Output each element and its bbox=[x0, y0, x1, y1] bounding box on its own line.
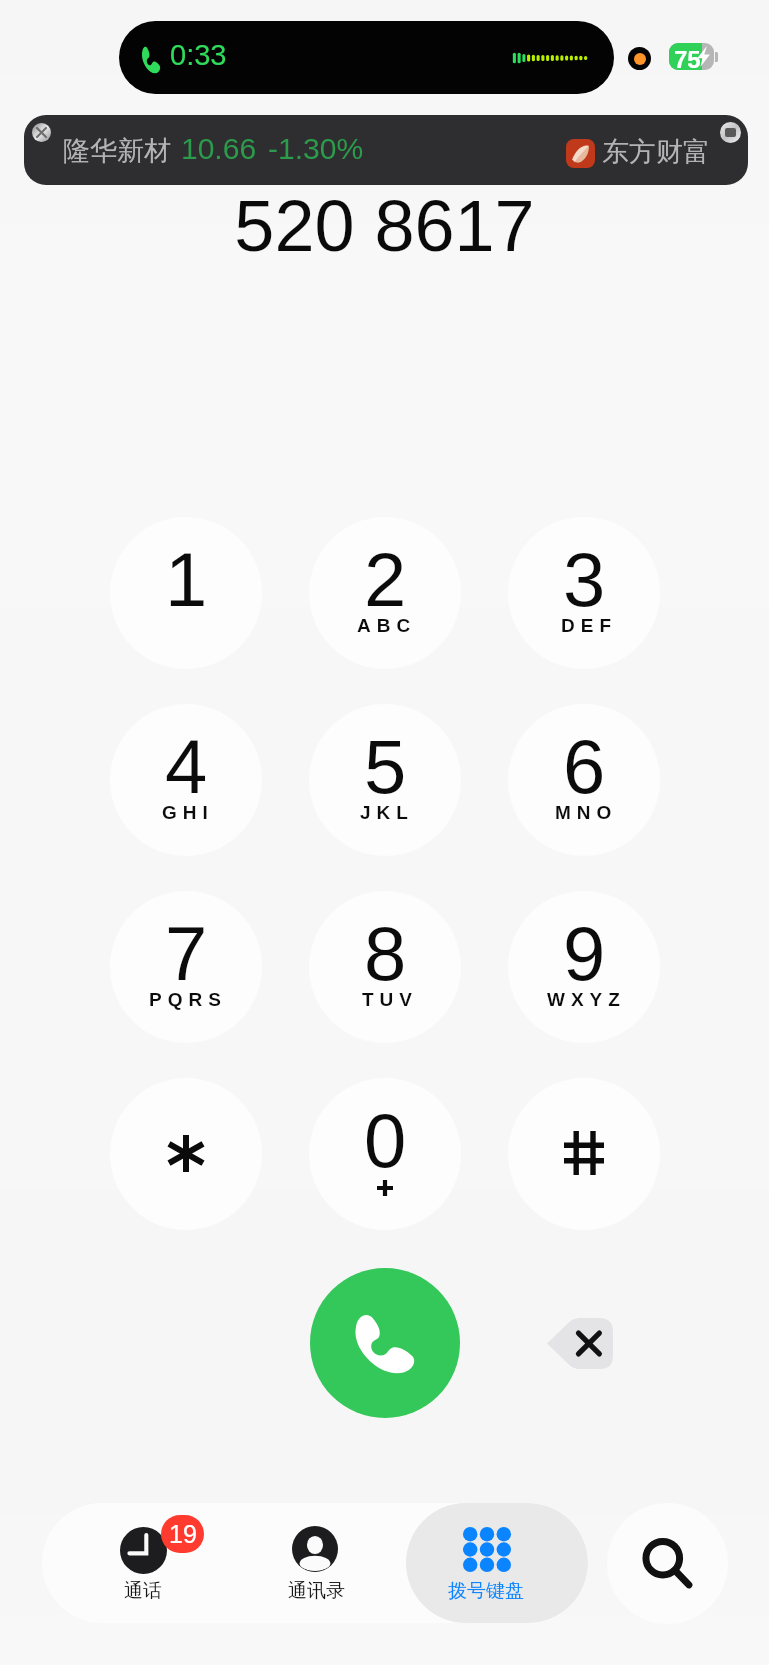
staticText: 3 bbox=[563, 537, 606, 622]
staticText: 19 bbox=[169, 1520, 197, 1548]
staticText: WXYZ bbox=[547, 989, 626, 1010]
staticText: MNO bbox=[555, 802, 618, 823]
button[interactable]: 2 bbox=[309, 517, 461, 669]
button[interactable]: 3 bbox=[508, 517, 660, 669]
staticText: DEF bbox=[558, 615, 614, 636]
staticText: 通讯录 bbox=[288, 1579, 345, 1603]
staticText: -1.30% bbox=[268, 132, 364, 166]
button[interactable]: 7 bbox=[110, 891, 262, 1043]
staticText: 6 bbox=[563, 724, 606, 809]
button[interactable]: Expand bbox=[720, 122, 741, 143]
button[interactable]: hash bbox=[508, 1078, 660, 1230]
button[interactable]: Stock notification bbox=[24, 115, 748, 185]
button[interactable]: 5 bbox=[309, 704, 461, 856]
button[interactable]: 0 bbox=[309, 1078, 461, 1230]
button[interactable]: 4 bbox=[110, 704, 262, 856]
button[interactable]: Backspace bbox=[547, 1318, 613, 1369]
staticText: TUV bbox=[359, 989, 415, 1010]
button[interactable]: 8 bbox=[309, 891, 461, 1043]
staticText: 8 bbox=[364, 911, 407, 996]
staticText: 75 bbox=[674, 46, 701, 70]
button[interactable]: 拨号键盘 bbox=[406, 1503, 588, 1623]
staticText: 0 bbox=[364, 1098, 407, 1183]
staticText: 东方财富 bbox=[602, 135, 710, 169]
button[interactable]: 1 bbox=[110, 517, 262, 669]
button[interactable]: Call bbox=[310, 1268, 460, 1418]
staticText: 0:33 bbox=[170, 39, 227, 71]
staticText: 7 bbox=[165, 911, 208, 996]
staticText: 520 8617 bbox=[234, 186, 535, 266]
staticText: PQRS bbox=[149, 989, 227, 1010]
button[interactable]: 19 bbox=[42, 1503, 224, 1623]
button[interactable]: Ongoing call bbox=[119, 21, 614, 94]
staticText: 隆华新材 bbox=[63, 134, 171, 168]
staticText: 1 bbox=[165, 537, 208, 622]
staticText: 10.66 bbox=[181, 132, 257, 166]
button[interactable]: Search bbox=[607, 1503, 728, 1624]
button[interactable]: 6 bbox=[508, 704, 660, 856]
staticText: 拨号键盘 bbox=[448, 1579, 524, 1603]
staticText: ABC bbox=[357, 615, 417, 636]
staticText: 5 bbox=[364, 724, 407, 809]
staticText: 4 bbox=[165, 724, 208, 809]
staticText: GHI bbox=[162, 802, 214, 823]
button[interactable]: Dismiss bbox=[32, 123, 51, 142]
staticText: 9 bbox=[563, 911, 606, 996]
button[interactable]: 通讯录 bbox=[224, 1503, 406, 1623]
staticText: 2 bbox=[364, 537, 407, 622]
button[interactable]: 9 bbox=[508, 891, 660, 1043]
staticText: 通话 bbox=[124, 1579, 162, 1603]
staticText: JKL bbox=[360, 802, 414, 823]
button[interactable]: star bbox=[110, 1078, 262, 1230]
